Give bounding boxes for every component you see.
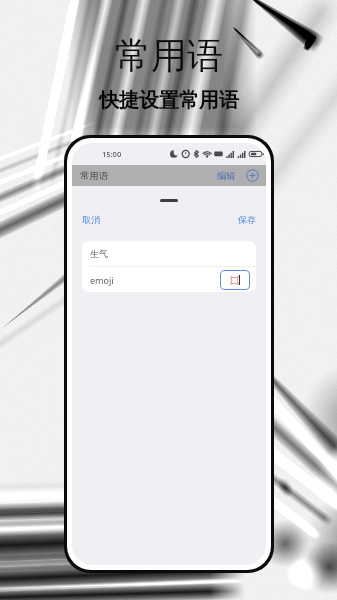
staticText: 常用语 bbox=[80, 170, 109, 182]
staticText: emoji bbox=[90, 274, 114, 286]
staticText: 常用语 bbox=[115, 33, 223, 78]
staticText: 快捷设置常用语 bbox=[99, 88, 239, 113]
button[interactable]: 取消 bbox=[82, 214, 100, 225]
button[interactable]: 编辑 bbox=[217, 170, 235, 181]
button[interactable]: Add bbox=[246, 169, 259, 182]
staticText: 生气 bbox=[90, 248, 108, 259]
button[interactable]: Emoji bbox=[220, 270, 250, 290]
button[interactable]: 保存 bbox=[238, 214, 256, 225]
staticText: 15:00 bbox=[102, 149, 122, 159]
